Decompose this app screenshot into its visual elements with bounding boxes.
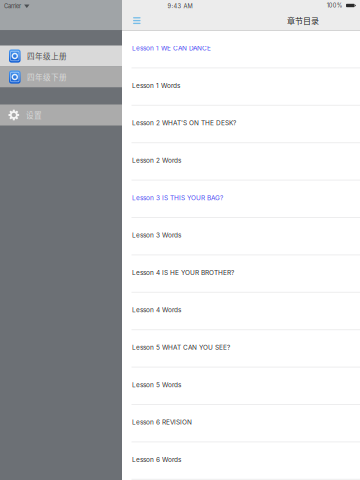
staticText: Lesson 4 IS HE YOUR BROTHER?	[132, 269, 234, 276]
button[interactable]: Lesson 5 Words	[122, 368, 360, 405]
button[interactable]: Lesson 4 Words	[122, 293, 360, 330]
staticText: Lesson 5 WHAT CAN YOU SEE?	[132, 343, 230, 351]
staticText: Lesson 2 WHAT'S ON THE DESK?	[132, 119, 236, 127]
button[interactable]: 设置	[0, 104, 122, 125]
button[interactable]: Lesson 5 WHAT CAN YOU SEE?	[122, 330, 360, 368]
staticText: Lesson 3 Words	[132, 231, 181, 239]
staticText: 设置	[26, 109, 42, 120]
button[interactable]: Lesson 2 WHAT'S ON THE DESK?	[122, 106, 360, 143]
staticText: 100%	[327, 2, 343, 9]
staticText: Lesson 3 IS THIS YOUR BAG?	[132, 194, 223, 202]
button[interactable]: 四年级上册	[0, 45, 122, 66]
button[interactable]: Lesson 3 IS THIS YOUR BAG?	[122, 181, 360, 218]
staticText: 9:43 AM	[167, 3, 192, 9]
staticText: Lesson 1 Words	[132, 82, 180, 89]
button[interactable]: Lesson 6 REVISION	[122, 405, 360, 442]
staticText: 四年级上册	[27, 50, 67, 61]
button[interactable]: 四年级下册	[0, 66, 122, 87]
staticText: Carrier	[4, 3, 21, 9]
button[interactable]: Show sidebar	[129, 13, 144, 28]
staticText: Lesson 1 WE CAN DANCE	[132, 44, 211, 52]
staticText: Lesson 5 Words	[132, 381, 181, 389]
button[interactable]: Lesson 4 IS HE YOUR BROTHER?	[122, 255, 360, 293]
button[interactable]: Lesson 3 Words	[122, 218, 360, 255]
staticText: Lesson 6 REVISION	[132, 418, 192, 426]
staticText: 四年级下册	[27, 71, 67, 82]
button[interactable]: Lesson 6 Words	[122, 442, 360, 480]
button[interactable]: Lesson 1 WE CAN DANCE	[122, 31, 360, 68]
button[interactable]: Lesson 2 Words	[122, 143, 360, 181]
staticText: Lesson 4 Words	[132, 306, 181, 314]
staticText: 章节目录	[287, 15, 319, 26]
staticText: Lesson 2 Words	[132, 156, 181, 164]
button[interactable]: Lesson 1 Words	[122, 68, 360, 106]
staticText: Lesson 6 Words	[132, 456, 181, 463]
